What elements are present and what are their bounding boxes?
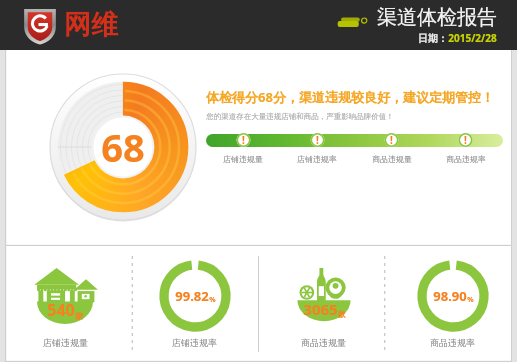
staticText: ! bbox=[316, 133, 319, 147]
staticText: 商品违规量 bbox=[372, 154, 412, 164]
staticText: 商品违规率 bbox=[446, 154, 486, 164]
button[interactable]: 3065 bbox=[259, 246, 388, 362]
staticText: ! bbox=[464, 133, 467, 147]
staticText: ! bbox=[242, 133, 245, 147]
staticText: 店铺违规率 bbox=[297, 154, 337, 164]
staticText: % bbox=[467, 295, 474, 305]
staticText: 款 bbox=[338, 310, 346, 319]
staticText: 网维 bbox=[64, 8, 118, 42]
button[interactable]: 警示 bbox=[457, 133, 474, 147]
staticText: 店铺违规率 bbox=[172, 337, 217, 348]
button[interactable]: 警示 bbox=[309, 133, 326, 147]
button[interactable]: 99.82 bbox=[130, 246, 259, 362]
button[interactable]: 警示 bbox=[383, 133, 400, 147]
staticText: 98.90 bbox=[433, 287, 467, 305]
button[interactable]: 违规指标进度条 bbox=[206, 134, 503, 147]
staticText: 家 bbox=[75, 311, 83, 321]
button[interactable]: 540 bbox=[0, 246, 130, 362]
staticText: % bbox=[209, 295, 216, 305]
staticText: 店铺违规量 bbox=[43, 337, 88, 348]
staticText: 商品违规量 bbox=[301, 337, 346, 348]
staticText: 店铺违规量 bbox=[223, 154, 263, 164]
staticText: 3065 bbox=[303, 299, 338, 319]
button[interactable]: 网维 logo bbox=[22, 5, 118, 45]
staticText: 540 bbox=[47, 299, 75, 321]
staticText: 68 bbox=[101, 121, 145, 173]
staticText: 日期： bbox=[418, 32, 448, 45]
staticText: ! bbox=[390, 133, 393, 147]
button[interactable]: 98.90 bbox=[388, 246, 517, 362]
staticText: 您的渠道存在大量违规店铺和商品，严重影响品牌价值！ bbox=[206, 112, 394, 121]
staticText: 渠道体检报告 bbox=[377, 5, 497, 30]
staticText: 2015/2/28 bbox=[448, 31, 497, 45]
staticText: 99.82 bbox=[175, 287, 209, 305]
button[interactable]: 警示 bbox=[235, 133, 252, 147]
staticText: 商品违规率 bbox=[430, 337, 475, 348]
staticText: 体检得分68分，渠道违规较良好，建议定期管控！ bbox=[206, 88, 494, 106]
